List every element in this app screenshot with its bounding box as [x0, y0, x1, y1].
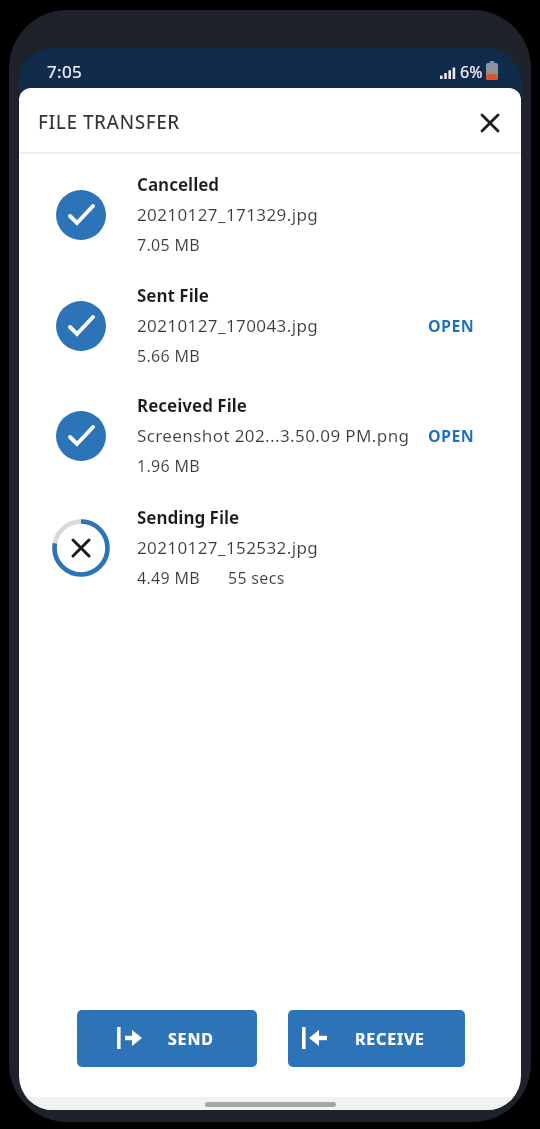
staticText: Sending File: [137, 506, 240, 529]
staticText: 1.96 MB: [137, 455, 200, 477]
staticText: 7.05 MB: [137, 234, 200, 256]
staticText: 20210127_152532.jpg: [137, 536, 319, 559]
staticText: 5.66 MB: [137, 345, 200, 367]
button[interactable]: [19, 167, 521, 267]
staticText: FILE TRANSFER: [38, 109, 180, 135]
staticText: Sent File: [137, 284, 209, 307]
staticText: 55 secs: [228, 567, 285, 589]
button[interactable]: SEND: [77, 1010, 257, 1067]
staticText: SEND: [168, 1028, 214, 1050]
staticText: 7:05: [47, 60, 82, 83]
staticText: 20210127_171329.jpg: [137, 203, 319, 226]
staticText: OPEN: [428, 315, 475, 337]
staticText: OPEN: [428, 425, 475, 447]
button[interactable]: [19, 278, 521, 378]
staticText: RECEIVE: [355, 1028, 425, 1050]
button[interactable]: OPEN: [419, 416, 485, 450]
staticText: 4.49 MB: [137, 567, 200, 589]
button[interactable]: [19, 388, 521, 488]
staticText: Received File: [137, 394, 247, 417]
button[interactable]: [473, 106, 507, 140]
staticText: Screenshot 202...3.50.09 PM.png: [137, 424, 410, 447]
staticText: Cancelled: [137, 173, 220, 196]
staticText: 6%: [460, 61, 483, 83]
button[interactable]: OPEN: [419, 306, 485, 340]
button[interactable]: [19, 500, 521, 600]
staticText: 20210127_170043.jpg: [137, 314, 319, 337]
button[interactable]: RECEIVE: [288, 1010, 465, 1067]
